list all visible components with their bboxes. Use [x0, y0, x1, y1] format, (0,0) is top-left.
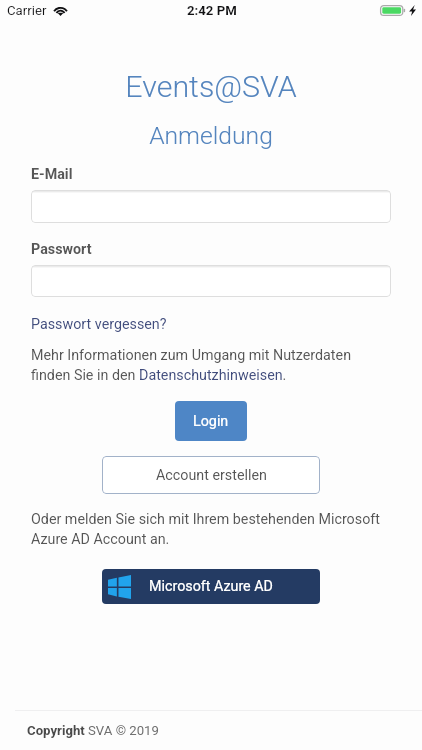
button[interactable]: E-Mail eingeben [31, 190, 391, 223]
staticText: Login [193, 413, 229, 430]
staticText: Anmeldung [0, 121, 422, 150]
button[interactable]: Passwort eingeben [31, 265, 391, 297]
staticText: Events@SVA [0, 69, 422, 105]
staticText: Copyright SVA © 2019 [27, 723, 159, 738]
staticText: Microsoft Azure AD [149, 578, 273, 595]
button[interactable]: Login [175, 401, 247, 441]
staticText: E-Mail [31, 166, 73, 183]
staticText: Passwort [31, 241, 92, 258]
button[interactable]: Account erstellen [102, 456, 320, 494]
button[interactable]: Microsoft Azure AD [102, 569, 320, 604]
staticText: Oder melden Sie sich mit Ihrem bestehend… [31, 511, 391, 547]
button[interactable]: Passwort vergessen? [31, 316, 167, 333]
staticText: Carrier [7, 3, 47, 18]
staticText: 2:42 PM [187, 3, 237, 18]
staticText: Mehr Informationen zum Umgang mit Nutzer… [31, 347, 352, 383]
staticText: Account erstellen [156, 467, 267, 484]
